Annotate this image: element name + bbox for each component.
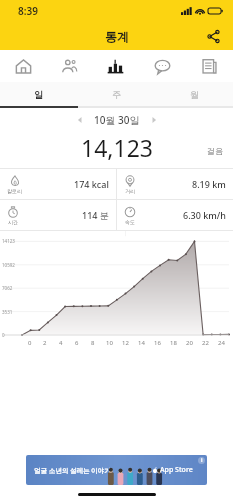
staticText: 걸음 [207,146,223,156]
button[interactable]: Next day [146,112,162,128]
button[interactable]: Home [0,50,46,82]
staticText: 7062 [2,285,13,291]
staticText: 22 [202,339,209,347]
staticText: 0 [2,332,5,338]
staticText: 속도 [125,219,135,225]
button[interactable]: 칼로리 [0,169,116,199]
staticText: 8.19 km [192,178,226,190]
staticText: 14,123 [81,132,153,162]
button[interactable]: Previous day [72,112,88,128]
button[interactable]: Feed [186,50,233,82]
staticText: 14 [138,339,145,347]
button[interactable]: Share [201,24,225,48]
button[interactable]: Chat [139,50,186,82]
staticText: 거리 [125,188,135,194]
button[interactable]: 월 [155,82,233,106]
staticText: 24 [218,339,225,347]
staticText: 10월 30일 [94,113,140,127]
staticText: App Store [160,465,193,475]
staticText: 2 [43,339,47,347]
button[interactable]: 거리 [117,169,233,199]
staticText: 6.30 km/h [183,209,226,221]
staticText: i [201,457,203,464]
button[interactable]: 일 [0,82,77,106]
staticText: 174 kcal [74,178,109,190]
staticText: 월 [190,89,199,100]
staticText: 20 [186,339,193,347]
button[interactable]: Ad info [198,457,205,464]
button[interactable]: 시간 [0,200,116,230]
staticText: 4 [59,339,63,347]
staticText: 6 [75,339,79,347]
staticText: 시간 [8,219,18,225]
staticText: 0 [28,339,32,347]
staticText: 얼굴 소년의 설레는 이야기 [34,466,111,475]
staticText: 통계 [105,29,129,44]
button[interactable]: Friends [46,50,92,82]
button[interactable]: 주 [77,82,155,106]
staticText: 16 [154,339,161,347]
staticText: 14123 [2,238,15,244]
staticText: 주 [112,89,121,100]
staticText: 일 [34,89,43,100]
staticText: 10592 [2,262,15,268]
staticText: 12 [122,339,129,347]
staticText: 8 [91,339,95,347]
button[interactable]: Statistics [92,50,139,82]
button[interactable]: 속도 [117,200,233,230]
staticText: 8:39 [18,4,38,18]
button[interactable]: 얼굴 소년의 설레는 이야기 [26,455,207,485]
staticText: 18 [170,339,177,347]
staticText: 114 분 [82,209,109,221]
staticText: 칼로리 [7,188,22,194]
staticText: 10 [106,339,113,347]
staticText: 3531 [2,309,13,315]
